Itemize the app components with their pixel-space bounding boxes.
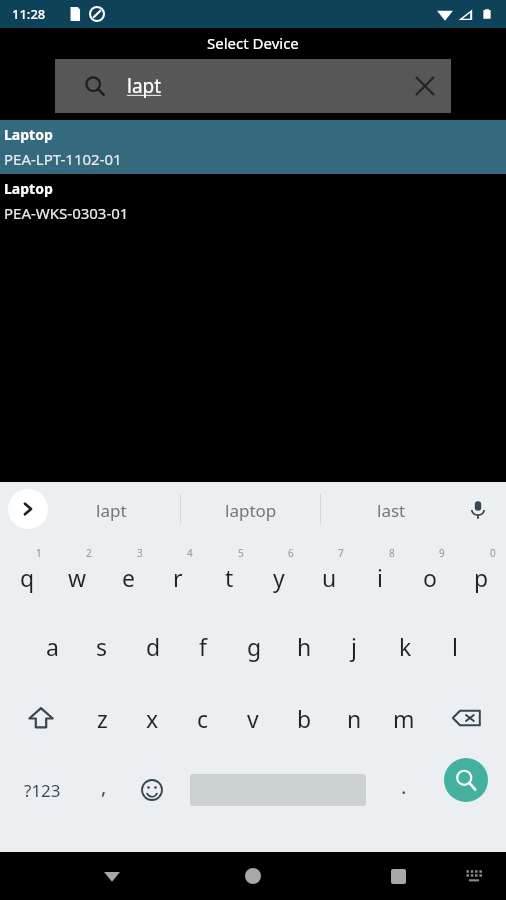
- button[interactable]: t: [204, 538, 254, 610]
- staticText: l: [452, 631, 458, 662]
- staticText: i: [377, 562, 383, 593]
- staticText: laptop: [225, 499, 277, 522]
- button[interactable]: d: [128, 610, 178, 682]
- button[interactable]: ?123: [6, 754, 78, 826]
- button[interactable]: Recent apps: [368, 852, 428, 900]
- staticText: 9: [439, 546, 445, 560]
- staticText: s: [96, 631, 108, 662]
- staticText: ,: [101, 773, 107, 800]
- staticText: f: [199, 631, 207, 662]
- staticText: 7: [338, 546, 344, 560]
- staticText: 3: [137, 546, 143, 560]
- button[interactable]: b: [279, 682, 329, 754]
- button[interactable]: s: [77, 610, 127, 682]
- button[interactable]: Shift: [15, 682, 67, 754]
- button[interactable]: e: [103, 538, 153, 610]
- staticText: p: [474, 562, 489, 593]
- button[interactable]: lapt: [53, 482, 169, 538]
- button[interactable]: ,: [80, 754, 128, 826]
- button[interactable]: y: [254, 538, 304, 610]
- button[interactable]: Backspace: [440, 682, 492, 754]
- button[interactable]: c: [178, 682, 228, 754]
- button[interactable]: h: [279, 610, 329, 682]
- staticText: a: [46, 631, 59, 662]
- button[interactable]: g: [229, 610, 279, 682]
- staticText: last: [377, 499, 406, 522]
- staticText: lapt: [127, 73, 162, 99]
- staticText: .: [401, 773, 407, 800]
- button[interactable]: o: [405, 538, 455, 610]
- button[interactable]: Switch keyboard: [452, 852, 496, 900]
- staticText: y: [273, 562, 285, 593]
- button[interactable]: Laptop: [0, 120, 506, 174]
- staticText: z: [97, 703, 108, 734]
- button[interactable]: i: [355, 538, 405, 610]
- staticText: q: [20, 562, 35, 593]
- staticText: u: [322, 562, 337, 593]
- staticText: n: [347, 703, 362, 734]
- button[interactable]: f: [178, 610, 228, 682]
- button[interactable]: last: [333, 482, 449, 538]
- staticText: e: [122, 562, 135, 593]
- staticText: lapt: [96, 499, 127, 522]
- button[interactable]: a: [27, 610, 77, 682]
- staticText: r: [173, 562, 183, 593]
- staticText: v: [247, 703, 259, 734]
- button[interactable]: v: [228, 682, 278, 754]
- staticText: g: [247, 631, 262, 662]
- button[interactable]: More suggestions: [8, 489, 48, 529]
- button[interactable]: j: [329, 610, 379, 682]
- button[interactable]: k: [380, 610, 430, 682]
- staticText: o: [423, 562, 437, 593]
- staticText: 8: [389, 546, 395, 560]
- button[interactable]: n: [329, 682, 379, 754]
- button[interactable]: z: [77, 682, 127, 754]
- button[interactable]: Clear search: [403, 64, 447, 108]
- button[interactable]: q: [2, 538, 52, 610]
- staticText: Laptop: [4, 125, 53, 144]
- staticText: 6: [288, 546, 294, 560]
- button[interactable]: Home: [223, 852, 283, 900]
- button[interactable]: .: [380, 754, 428, 826]
- staticText: 5: [238, 546, 244, 560]
- staticText: ?123: [24, 779, 61, 802]
- button[interactable]: m: [379, 682, 429, 754]
- staticText: t: [225, 562, 234, 593]
- staticText: b: [297, 703, 312, 734]
- button[interactable]: w: [52, 538, 102, 610]
- button[interactable]: lapt: [55, 59, 451, 113]
- button[interactable]: l: [430, 610, 480, 682]
- staticText: 2: [86, 546, 92, 560]
- button[interactable]: u: [304, 538, 354, 610]
- button[interactable]: laptop: [193, 482, 309, 538]
- button[interactable]: Hide keyboard: [82, 852, 142, 900]
- staticText: 4: [187, 546, 193, 560]
- button[interactable]: x: [127, 682, 177, 754]
- staticText: 1: [36, 546, 42, 560]
- staticText: PEA-LPT-1102-01: [4, 149, 122, 169]
- staticText: d: [146, 631, 161, 662]
- staticText: Laptop: [4, 179, 53, 198]
- staticText: h: [297, 631, 312, 662]
- staticText: w: [68, 562, 87, 593]
- button[interactable]: Emoji: [128, 754, 176, 826]
- staticText: 11:28: [12, 5, 46, 23]
- button[interactable]: Search: [444, 758, 488, 802]
- staticText: m: [393, 703, 415, 734]
- staticText: Select Device: [207, 33, 299, 53]
- staticText: 0: [490, 546, 496, 560]
- button[interactable]: Laptop: [0, 174, 506, 230]
- button[interactable]: p: [456, 538, 506, 610]
- button[interactable]: Voice input: [460, 492, 496, 528]
- staticText: PEA-WKS-0303-01: [4, 203, 129, 223]
- button[interactable]: r: [153, 538, 203, 610]
- staticText: k: [399, 631, 412, 662]
- staticText: j: [351, 631, 357, 662]
- staticText: x: [146, 703, 159, 734]
- staticText: c: [197, 703, 209, 734]
